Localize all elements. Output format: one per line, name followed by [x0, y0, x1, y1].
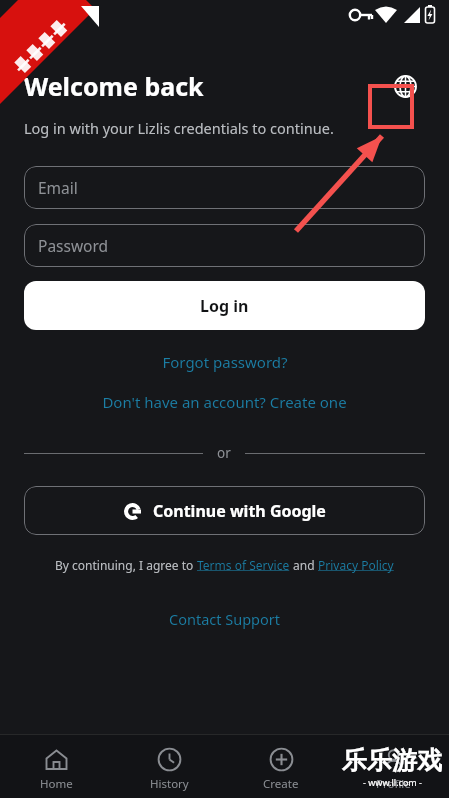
staticText: Log in	[200, 295, 249, 317]
button[interactable]: Email	[24, 166, 425, 209]
staticText: 乐乐游戏	[342, 745, 442, 776]
button[interactable]: Create	[225, 741, 337, 792]
button[interactable]: Home	[0, 741, 113, 792]
button[interactable]: Log in	[24, 281, 425, 330]
staticText: Create	[263, 776, 299, 792]
staticText: History	[150, 776, 189, 792]
button[interactable]: Continue with Google	[24, 486, 425, 535]
staticText: or	[217, 444, 231, 462]
staticText: Terms of Service	[197, 557, 290, 573]
staticText: Welcome back	[24, 69, 204, 103]
staticText: - www.ll.com -	[363, 776, 422, 788]
button[interactable]: Forgot password?	[0, 352, 449, 372]
staticText: and	[290, 557, 318, 573]
button[interactable]: Don't have an account? Create one	[0, 392, 449, 412]
button[interactable]: Contact Support	[0, 609, 449, 629]
button[interactable]: Change language	[385, 66, 425, 106]
button[interactable]: Terms of Service	[197, 557, 290, 573]
button[interactable]: History	[113, 741, 225, 792]
staticText: Log in with your Lizlis credentials to c…	[24, 118, 334, 138]
staticText: Privacy Policy	[318, 557, 394, 573]
staticText: Don't have an account? Create one	[102, 392, 347, 412]
staticText: Forgot password?	[162, 352, 288, 372]
staticText: Password	[38, 235, 109, 256]
staticText: By continuing, I agree to	[55, 557, 197, 573]
staticText: Contact Support	[169, 609, 280, 629]
staticText: Email	[38, 177, 78, 198]
staticText: Profile	[376, 776, 411, 792]
staticText: Home	[40, 776, 73, 792]
staticText: Continue with Google	[153, 500, 326, 522]
button[interactable]: Privacy Policy	[318, 557, 394, 573]
button[interactable]: Password	[24, 224, 425, 267]
button[interactable]: Profile	[337, 741, 449, 792]
